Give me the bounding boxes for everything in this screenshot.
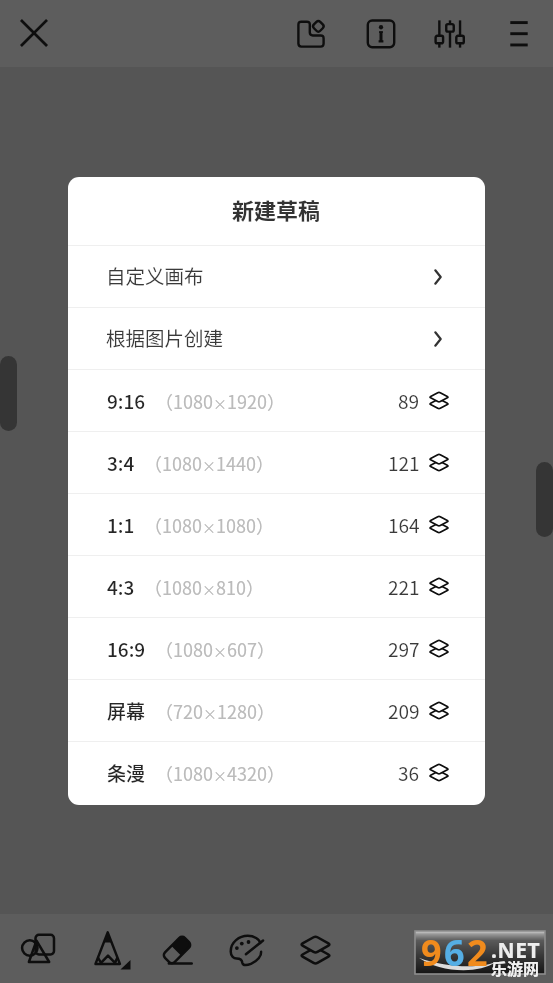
staticText: .NET bbox=[491, 936, 541, 965]
staticText: 1:1 bbox=[107, 511, 135, 539]
staticText: 6 bbox=[444, 928, 467, 971]
button[interactable]: 根据图片创建 bbox=[68, 308, 485, 369]
button[interactable]: Palette bbox=[222, 926, 270, 974]
staticText: 9 bbox=[421, 928, 444, 971]
button[interactable]: Layers bbox=[291, 926, 339, 974]
button[interactable]: 16:9 bbox=[68, 618, 485, 679]
button[interactable]: 自定义画布 bbox=[68, 246, 485, 307]
button[interactable]: 4:3 bbox=[68, 556, 485, 617]
staticText: 4:3 bbox=[107, 573, 135, 601]
staticText: 屏幕 bbox=[107, 697, 146, 725]
button[interactable]: Templates bbox=[289, 12, 333, 56]
button[interactable]: Menu bbox=[497, 12, 541, 56]
staticText: 209 bbox=[388, 697, 420, 725]
staticText: （1080×4320） bbox=[155, 760, 285, 786]
staticText: 36 bbox=[398, 759, 420, 787]
button[interactable]: 条漫 bbox=[68, 742, 485, 803]
staticText: 2 bbox=[467, 928, 490, 971]
staticText: （1080×607） bbox=[155, 636, 275, 662]
button[interactable]: Adjust bbox=[428, 12, 472, 56]
button[interactable]: 1:1 bbox=[68, 494, 485, 555]
staticText: （1080×1440） bbox=[144, 450, 274, 476]
staticText: 新建草稿 bbox=[232, 193, 321, 225]
staticText: 16:9 bbox=[107, 635, 146, 663]
staticText: 自定义画布 bbox=[106, 261, 204, 289]
staticText: 根据图片创建 bbox=[106, 323, 224, 351]
staticText: （1080×1920） bbox=[155, 388, 285, 414]
staticText: 9:16 bbox=[107, 387, 146, 415]
button[interactable]: Close bbox=[11, 10, 57, 56]
staticText: 164 bbox=[388, 511, 420, 539]
staticText: 89 bbox=[398, 387, 420, 415]
staticText: 297 bbox=[388, 635, 420, 663]
button[interactable]: Eraser bbox=[153, 926, 201, 974]
staticText: （720×1280） bbox=[155, 698, 275, 724]
staticText: （1080×1080） bbox=[144, 512, 274, 538]
staticText: 221 bbox=[388, 573, 420, 601]
staticText: 3:4 bbox=[107, 449, 135, 477]
staticText: 条漫 bbox=[107, 759, 146, 787]
button[interactable]: 9:16 bbox=[68, 370, 485, 431]
staticText: （1080×810） bbox=[144, 574, 264, 600]
button[interactable]: 3:4 bbox=[68, 432, 485, 493]
button[interactable]: 屏幕 bbox=[68, 680, 485, 741]
button[interactable]: Info bbox=[359, 12, 403, 56]
button[interactable]: Brush bbox=[89, 927, 137, 975]
staticText: 121 bbox=[388, 449, 420, 477]
staticText: 乐游网 bbox=[491, 956, 540, 979]
button[interactable]: Shapes bbox=[15, 924, 63, 972]
